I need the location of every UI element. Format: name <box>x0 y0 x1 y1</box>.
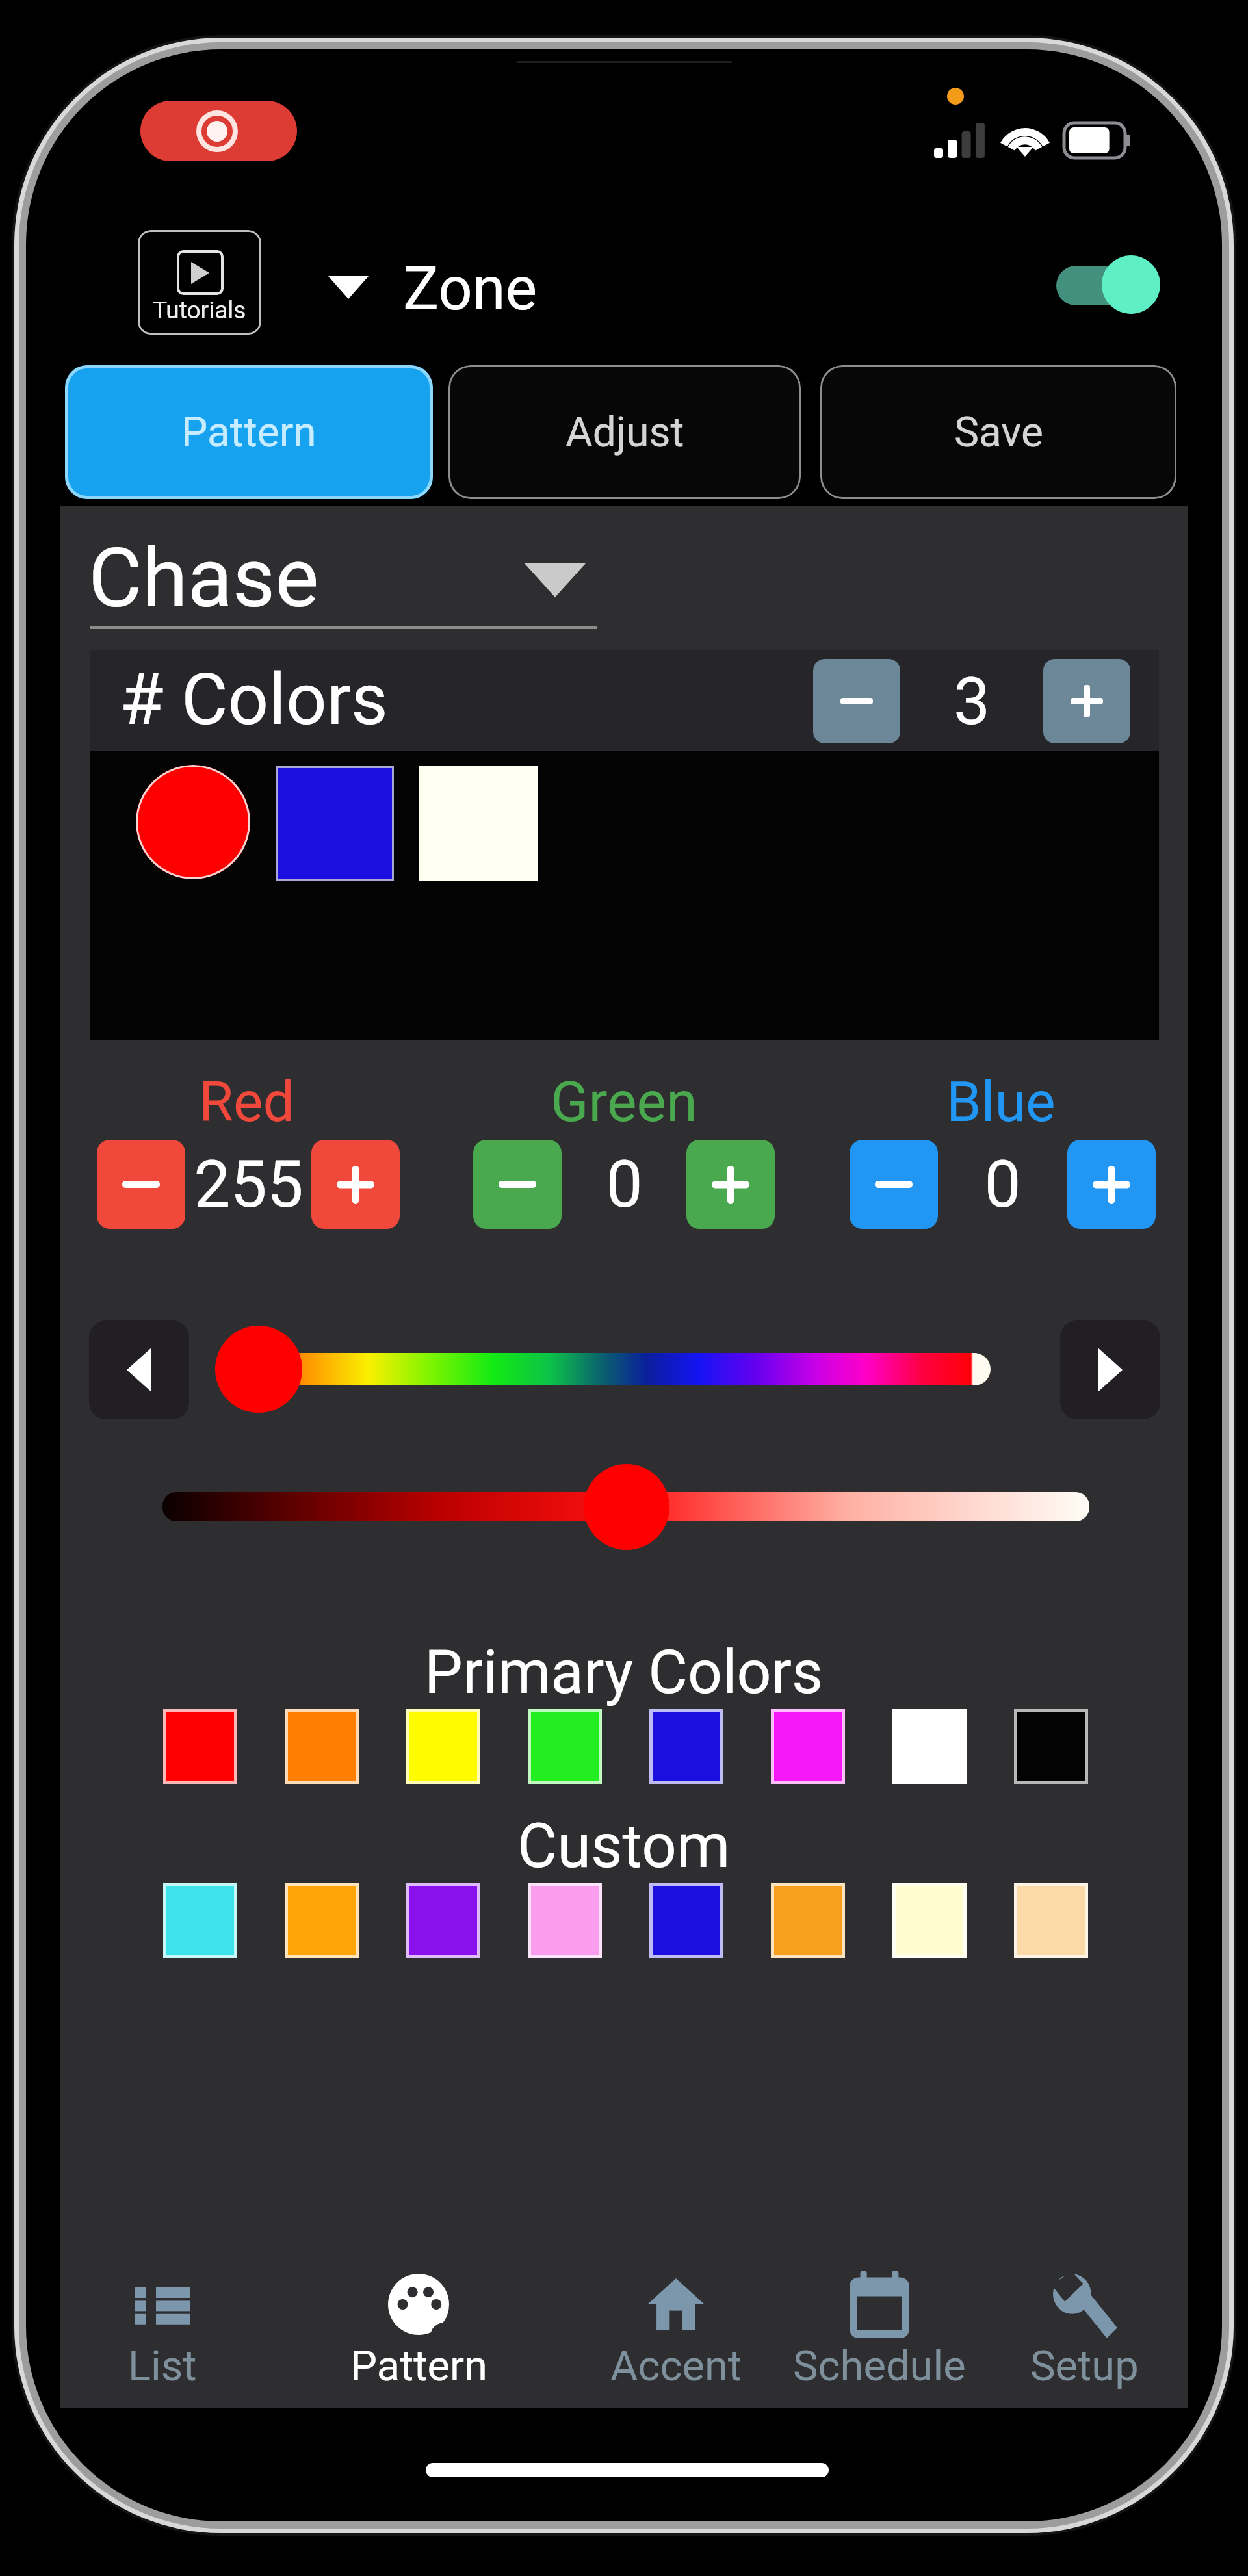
button[interactable]: Remove colour <box>813 659 900 743</box>
button[interactable]: Colour swatch <box>1014 1883 1088 1958</box>
button[interactable]: Hue slider <box>259 1353 991 1385</box>
button[interactable]: Colour swatch <box>285 1883 359 1958</box>
button[interactable]: List <box>45 2235 279 2402</box>
button[interactable]: Colour swatch <box>285 1709 359 1784</box>
button[interactable]: Increase Blue <box>1067 1140 1156 1229</box>
button[interactable]: Colour swatch <box>163 1709 237 1784</box>
button[interactable]: Colour swatch <box>163 1883 237 1958</box>
button[interactable]: Colour swatch <box>1014 1709 1088 1784</box>
staticText: # Colors <box>120 658 388 741</box>
button[interactable]: Colour swatch <box>528 1883 602 1958</box>
button[interactable]: Pattern <box>302 2235 536 2402</box>
button[interactable]: Screen recording indicator <box>140 101 297 161</box>
button[interactable]: Colour swatch <box>528 1709 602 1784</box>
button[interactable]: Chase <box>88 530 319 626</box>
staticText: Green <box>551 1069 697 1135</box>
button[interactable]: Colour swatch <box>406 1883 480 1958</box>
staticText: Tutorials <box>153 296 246 324</box>
staticText: 0 <box>606 1146 643 1222</box>
staticText: 255 <box>194 1146 304 1222</box>
staticText: Pattern <box>181 408 317 457</box>
button[interactable]: Colour 1 <box>136 765 250 879</box>
staticText: Setup <box>1030 2341 1139 2391</box>
button[interactable]: Colour swatch <box>892 1883 967 1958</box>
button[interactable]: Schedule <box>762 2235 996 2402</box>
staticText: Accent <box>610 2341 742 2391</box>
button[interactable]: Colour 2 <box>276 766 394 881</box>
staticText: Custom <box>517 1810 731 1882</box>
button[interactable]: Increase Green <box>686 1140 775 1229</box>
button[interactable]: Colour swatch <box>649 1709 723 1784</box>
button[interactable]: Decrease Green <box>473 1140 562 1229</box>
button[interactable]: Next colour <box>1060 1320 1160 1419</box>
staticText: Pattern <box>350 2341 487 2391</box>
button[interactable]: Colour swatch <box>771 1883 845 1958</box>
button[interactable]: Brightness slider <box>162 1492 1089 1521</box>
button[interactable]: Zone power toggle <box>1043 246 1167 322</box>
staticText: 3 <box>954 663 991 740</box>
staticText: Save <box>954 408 1043 457</box>
button[interactable]: Previous colour <box>89 1320 189 1419</box>
staticText: Blue <box>946 1069 1056 1135</box>
button[interactable]: Colour 3 <box>419 766 538 881</box>
button[interactable]: Tutorials <box>138 230 261 335</box>
button[interactable]: Decrease Blue <box>850 1140 938 1229</box>
staticText: List <box>128 2341 197 2391</box>
staticText: 0 <box>984 1146 1021 1222</box>
button[interactable]: Colour swatch <box>771 1709 845 1784</box>
button[interactable]: Setup <box>967 2235 1201 2402</box>
button[interactable]: Accent <box>559 2235 793 2402</box>
staticText: Schedule <box>793 2341 966 2391</box>
button[interactable]: Increase Red <box>311 1140 400 1229</box>
button[interactable]: Save <box>820 365 1176 499</box>
button[interactable]: Colour swatch <box>406 1709 480 1784</box>
staticText: Adjust <box>565 408 684 457</box>
button[interactable]: Colour swatch <box>649 1883 723 1958</box>
staticText: Primary Colors <box>424 1637 824 1708</box>
button[interactable]: Adjust <box>448 365 801 499</box>
staticText: Zone <box>403 254 538 324</box>
staticText: Red <box>199 1069 295 1135</box>
button[interactable]: Decrease Red <box>97 1140 185 1229</box>
button[interactable]: Add colour <box>1043 659 1130 743</box>
button[interactable]: Colour swatch <box>892 1709 967 1784</box>
button[interactable]: Pattern <box>65 365 433 499</box>
